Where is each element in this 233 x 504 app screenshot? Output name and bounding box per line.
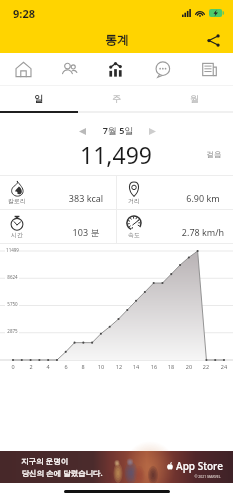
staticText: 일 [34,93,43,104]
staticText: 월 [190,93,199,104]
button[interactable]: News [186,53,233,85]
staticText: 10 [94,363,108,370]
staticText: 20 [182,363,196,370]
staticText: 걸음 [199,150,229,159]
button[interactable]: Home [0,53,46,85]
staticText: 7월 5일 [93,124,143,136]
button[interactable]: 속도 [117,210,233,243]
staticText: 22 [199,363,213,370]
staticText: 당신의 손에 달렸습니다. [21,468,103,478]
staticText: 2 [24,363,38,370]
staticText: 103 분 [44,226,128,238]
staticText: 지구의 운명이 [21,456,68,466]
button[interactable]: Advertisement [0,451,233,483]
staticText: 0 [6,363,20,370]
staticText: 16 [147,363,161,370]
staticText: 383 kcal [44,192,128,204]
staticText: 속도 [128,231,140,239]
button[interactable]: Messages [139,53,186,85]
staticText: 6.90 km [161,192,233,204]
staticText: 6 [59,363,73,370]
staticText: 9:28 [13,6,35,21]
button[interactable]: 시간 [0,210,116,243]
staticText: 8 [76,363,90,370]
button[interactable]: Next day [141,120,163,142]
button[interactable]: 주 [77,86,155,111]
staticText: 12 [112,363,126,370]
staticText: 8624 [7,274,18,280]
button[interactable]: Statistics [92,53,139,85]
button[interactable]: 월 [155,86,233,111]
staticText: 시간 [11,231,23,239]
button[interactable]: 칼로리 [0,176,116,209]
staticText: 14 [129,363,143,370]
staticText: App Store [176,459,223,473]
staticText: 2.78 km/h [161,226,233,238]
button[interactable]: Friends [46,53,92,85]
staticText: 11,499 [64,139,168,170]
staticText: 4 [41,363,55,370]
button[interactable]: 거리 [117,176,233,209]
staticText: 거리 [128,197,140,205]
staticText: 주 [112,93,121,104]
staticText: 24 [217,363,231,370]
staticText: © 2021 MARVEL [194,474,221,479]
button[interactable]: 일 [0,86,77,111]
button[interactable]: Previous day [71,120,93,142]
staticText: 2875 [7,328,18,334]
staticText: 칼로리 [8,197,26,205]
staticText: 11499 [6,247,19,253]
button[interactable]: Share [201,28,225,52]
staticText: 통계 [105,32,129,47]
staticText: 5750 [7,301,18,307]
staticText: 18 [164,363,178,370]
